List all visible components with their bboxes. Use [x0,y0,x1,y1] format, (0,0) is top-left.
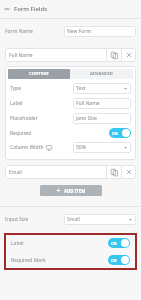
button[interactable]: Full Name [5,48,106,62]
staticText: Column Width [10,144,44,151]
staticText: Label [11,240,24,247]
button[interactable]: Remove [122,48,136,62]
staticText: Small [67,216,80,223]
staticText: Label [10,100,23,107]
button[interactable]: Text [73,83,131,94]
button[interactable]: Remove [122,165,136,179]
staticText: Form Fields [14,5,48,13]
staticText: 50% [76,144,86,151]
staticText: Input Size [5,216,29,223]
button[interactable]: Email [5,165,106,179]
staticText: Placeholder [10,115,38,122]
staticText: Required [10,130,32,137]
staticText: Full Name [9,52,33,59]
button[interactable]: ADD ITEM [40,185,102,196]
staticText: Full Name [76,100,100,107]
button[interactable]: Form Fields [0,0,141,18]
staticText: Form Name [5,28,33,35]
staticText: ADVANCED [90,71,113,77]
staticText: Type [10,85,22,92]
staticText: Email [9,169,22,176]
staticText: New Form [67,28,92,35]
staticText: CONTENT [29,71,49,77]
button[interactable]: ADVANCED [70,69,133,79]
staticText: Jane Doe [76,115,97,122]
button[interactable]: Small [64,214,136,225]
button[interactable]: Full Name [73,98,131,109]
button[interactable]: Toggle on [109,128,131,138]
staticText: Text [76,85,86,92]
button[interactable]: 50% [73,142,131,153]
button[interactable]: New Form [64,26,136,37]
staticText: ON [111,241,117,246]
button[interactable]: Jane Doe [73,113,131,124]
staticText: ON [112,131,118,136]
button[interactable]: Toggle on [108,255,130,265]
staticText: ADD ITEM [64,188,86,194]
button[interactable]: Duplicate [107,165,121,179]
button[interactable]: Duplicate [107,48,121,62]
button[interactable]: Toggle on [108,238,130,248]
staticText: Required Mark [11,257,46,264]
staticText: ON [111,258,117,263]
button[interactable]: CONTENT [8,69,70,79]
